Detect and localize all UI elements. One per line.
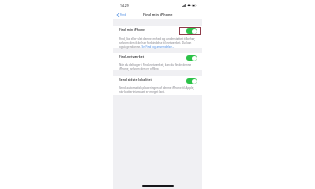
staticText: Send automatisk placeringen af denne iPh… <box>119 86 197 94</box>
staticText: Find, lås eller slet denne enhed og unde… <box>119 37 197 49</box>
staticText: Find min iPhone <box>119 28 146 32</box>
staticText: Find min iPhone <box>143 12 173 17</box>
button[interactable]: Find-netværket <box>113 53 202 64</box>
staticText: Find <box>120 13 127 17</box>
button[interactable]: Back to Find <box>117 13 127 17</box>
button[interactable]: Find min iPhone <box>113 26 202 37</box>
staticText: Send sidste lokalitet <box>119 78 152 82</box>
staticText: Når du deltager i Find-netværket, kan du… <box>119 63 197 71</box>
staticText: 14.29 <box>120 3 129 8</box>
button[interactable]: Send sidste lokalitet <box>113 76 202 87</box>
staticText: Find-netværket <box>119 55 145 59</box>
